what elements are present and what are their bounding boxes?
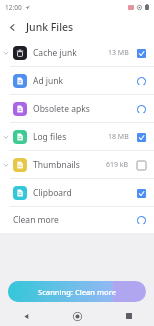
staticText: Clean more bbox=[13, 214, 134, 226]
staticText: Obsolete apks bbox=[33, 103, 134, 115]
staticText: 18 MB bbox=[108, 132, 129, 142]
button[interactable]: Thumbnails bbox=[0, 151, 154, 178]
button[interactable]: Selected bbox=[134, 130, 148, 144]
staticText: 12:00 bbox=[5, 3, 22, 12]
button[interactable]: Back bbox=[0, 15, 24, 39]
button[interactable]: Not selected bbox=[134, 158, 148, 172]
button[interactable]: Scanning: Clean more bbox=[8, 281, 146, 302]
staticText: 619 kB bbox=[106, 160, 129, 170]
staticText: Log files bbox=[33, 131, 108, 143]
button[interactable]: Ad junk bbox=[0, 67, 154, 94]
staticText: Junk Files bbox=[26, 20, 74, 34]
button[interactable]: Log files bbox=[0, 123, 154, 150]
button[interactable]: Selected bbox=[134, 186, 148, 200]
staticText: Ad junk bbox=[33, 75, 134, 87]
button[interactable]: Clipboard bbox=[0, 179, 154, 206]
button[interactable]: Scanning bbox=[134, 102, 148, 116]
button[interactable]: Obsolete apks bbox=[0, 95, 154, 122]
staticText: Cache junk bbox=[33, 47, 108, 59]
button[interactable]: Recents bbox=[103, 306, 154, 326]
button[interactable]: Back bbox=[0, 306, 52, 326]
button[interactable]: Scanning bbox=[134, 74, 148, 88]
button[interactable]: Clean more bbox=[0, 207, 154, 233]
staticText: Clipboard bbox=[33, 187, 134, 199]
button[interactable]: Selected bbox=[134, 46, 148, 60]
staticText: 13 MB bbox=[108, 48, 129, 58]
button[interactable]: Cache junk bbox=[0, 39, 154, 66]
staticText: Scanning: Clean more bbox=[38, 287, 116, 297]
button[interactable]: Home bbox=[52, 306, 103, 326]
staticText: Thumbnails bbox=[33, 159, 106, 171]
